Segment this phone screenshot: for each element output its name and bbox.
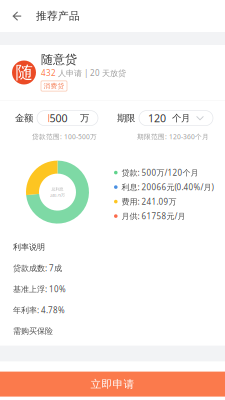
staticText: 期限范围: 120-360个月	[137, 132, 209, 141]
staticText: 期限	[117, 112, 135, 124]
staticText: 贷款范围: 100-500万	[32, 132, 97, 141]
staticText: 500	[49, 111, 67, 125]
staticText: 需购买保险	[13, 326, 53, 336]
staticText: 月供: 61758元/月	[122, 211, 186, 221]
staticText: 432	[41, 68, 56, 78]
staticText: 随	[15, 62, 32, 83]
staticText: 120	[148, 111, 166, 125]
staticText: 消费贷	[43, 82, 64, 90]
staticText: 金额	[15, 112, 33, 124]
button[interactable]: Back	[0, 0, 36, 32]
staticText: 费用: 241.09万	[122, 196, 177, 207]
staticText: 总利息	[51, 187, 63, 191]
staticText: 万	[80, 112, 89, 124]
staticText: 立即申请	[90, 377, 134, 391]
staticText: 240.79万	[50, 192, 65, 198]
staticText: 年利率: 4.78%	[13, 305, 65, 315]
staticText: 利息: 20066元(0.40%/月)	[122, 182, 214, 192]
staticText: 基准上浮: 10%	[13, 284, 66, 294]
staticText: 人申请 | 20 天放贷	[58, 68, 126, 78]
staticText: 随意贷	[41, 52, 77, 67]
staticText: 贷款: 500万/120个月	[122, 167, 199, 178]
staticText: 个月	[172, 112, 190, 124]
staticText: 推荐产品	[36, 9, 80, 22]
staticText: 贷款成数: 7成	[13, 263, 62, 273]
staticText: 利率说明	[13, 242, 45, 252]
button[interactable]: 立即申请	[0, 372, 225, 397]
